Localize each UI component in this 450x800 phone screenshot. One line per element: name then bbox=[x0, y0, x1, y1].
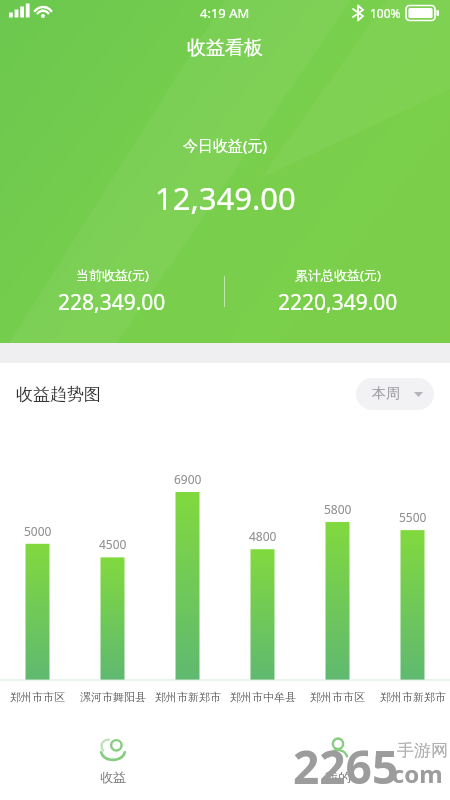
staticText: 收益 bbox=[100, 769, 126, 785]
button[interactable]: 收益 bbox=[0, 726, 225, 800]
staticText: 228,349.00 bbox=[58, 288, 166, 317]
staticText: 今日收益(元) bbox=[183, 135, 268, 155]
staticText: 郑州市中牟县 bbox=[230, 690, 296, 704]
staticText: 本周 bbox=[372, 385, 400, 403]
staticText: 5000 bbox=[24, 523, 52, 539]
button[interactable]: 本周 bbox=[356, 378, 434, 410]
staticText: 2220,349.00 bbox=[278, 288, 398, 317]
staticText: 5800 bbox=[324, 501, 352, 517]
staticText: 我的 bbox=[325, 769, 351, 785]
staticText: 4:19 AM bbox=[200, 4, 250, 22]
staticText: 漯河市舞阳县 bbox=[80, 690, 146, 704]
staticText: 郑州市市区 bbox=[10, 690, 65, 704]
staticText: 郑州市新郑市 bbox=[380, 690, 446, 704]
staticText: 2265 bbox=[293, 735, 399, 798]
staticText: 4500 bbox=[99, 536, 127, 552]
staticText: 累计总收益(元) bbox=[295, 266, 381, 284]
staticText: 100% bbox=[370, 5, 401, 21]
staticText: 4800 bbox=[249, 528, 277, 544]
staticText: 郑州市市区 bbox=[310, 690, 365, 704]
staticText: 收益看板 bbox=[187, 36, 263, 60]
other: 我的 bbox=[325, 737, 351, 763]
staticText: 12,349.00 bbox=[155, 177, 296, 219]
staticText: 收益趋势图 bbox=[16, 384, 101, 405]
staticText: 手游网 bbox=[397, 740, 448, 761]
staticText: 郑州市新郑市 bbox=[155, 690, 221, 704]
button[interactable]: 我的 bbox=[225, 726, 450, 800]
other: 收益 bbox=[100, 737, 126, 763]
staticText: .com bbox=[385, 757, 443, 790]
staticText: 5500 bbox=[399, 509, 427, 525]
staticText: 当前收益(元) bbox=[76, 266, 149, 284]
staticText: 6900 bbox=[174, 471, 202, 487]
